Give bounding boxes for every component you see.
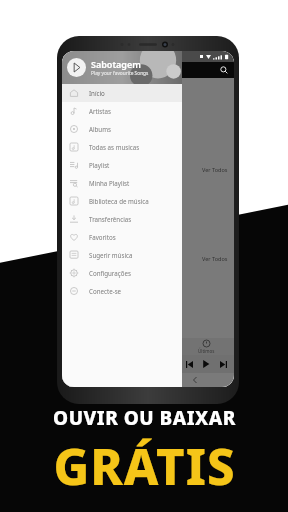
button[interactable]: Sugerir música	[62, 246, 182, 264]
staticText: Favoritos	[89, 233, 116, 241]
staticText: Artistas	[89, 107, 111, 115]
staticText: Últimos	[198, 348, 215, 354]
button[interactable]: Previous	[181, 356, 197, 372]
button[interactable]: Todas as musicas	[62, 138, 182, 156]
button[interactable]: Últimos	[179, 338, 234, 355]
button[interactable]: Playlist	[62, 156, 182, 174]
button[interactable]: Back	[188, 373, 202, 387]
button[interactable]: Minha Playlist	[62, 174, 182, 192]
button[interactable]: Conecte-se	[62, 282, 182, 300]
button[interactable]: Transferências	[62, 210, 182, 228]
staticText: Biblioteca de música	[89, 197, 149, 205]
button[interactable]: Favoritos	[62, 228, 182, 246]
staticText: Minha Playlist	[89, 179, 130, 187]
button[interactable]: Ver Todos	[202, 255, 228, 262]
staticText: Sabotagem	[91, 58, 141, 70]
button[interactable]: Ver Todos	[202, 166, 228, 173]
staticText: Sugerir música	[89, 251, 133, 259]
staticText: 19:37	[66, 53, 81, 60]
button[interactable]: Next	[215, 356, 231, 372]
staticText: Playlist	[89, 161, 110, 169]
staticText: OUVIR OU BAIXAR	[53, 405, 236, 431]
button[interactable]: Search	[218, 64, 230, 76]
button[interactable]: Início	[62, 84, 182, 102]
staticText: Todas as musicas	[89, 143, 140, 151]
button[interactable]: Artistas	[62, 102, 182, 120]
staticText: Configurações	[89, 269, 131, 277]
staticText: Albums	[89, 125, 111, 133]
button[interactable]: Configurações	[62, 264, 182, 282]
staticText: GRÁTIS	[53, 433, 236, 500]
staticText: Conecte-se	[89, 287, 122, 295]
staticText: Transferências	[89, 215, 132, 223]
staticText: Início	[89, 89, 105, 97]
button[interactable]: Albums	[62, 120, 182, 138]
button[interactable]: Play	[197, 355, 215, 373]
staticText: Play your favourite Songs	[91, 70, 149, 77]
button[interactable]: Biblioteca de música	[62, 192, 182, 210]
